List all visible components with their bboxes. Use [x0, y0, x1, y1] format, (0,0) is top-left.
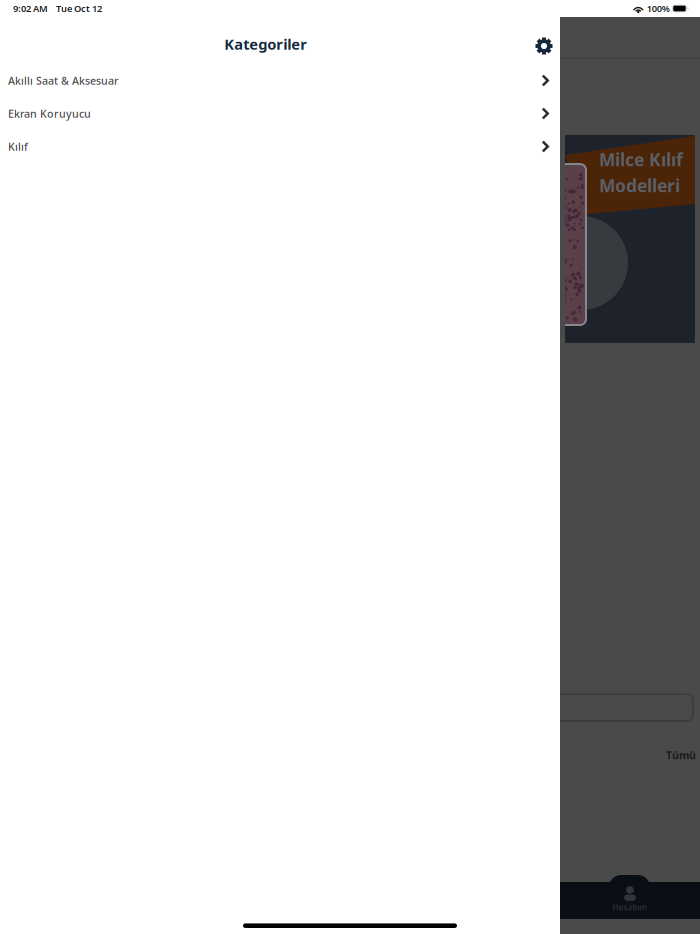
- staticText: Kategoriler: [224, 34, 307, 54]
- staticText: 9:02 AM: [13, 2, 48, 15]
- button[interactable]: Settings: [535, 14, 564, 62]
- button[interactable]: Akıllı Saat & Aksesuar: [0, 64, 560, 97]
- staticText: Modelleri: [599, 174, 680, 197]
- button[interactable]: Ekran Koruyucu: [0, 97, 560, 130]
- button[interactable]: Hesabım: [600, 886, 660, 913]
- staticText: Hesabım: [612, 902, 647, 913]
- staticText: 100%: [647, 2, 670, 15]
- staticText: Milce Kılıf: [599, 148, 683, 171]
- staticText: Tümü: [666, 748, 696, 762]
- button[interactable]: Kılıf: [0, 130, 560, 163]
- staticText: Kılıf: [8, 139, 28, 154]
- staticText: Ekran Koruyucu: [8, 106, 91, 121]
- staticText: Tue Oct 12: [56, 2, 102, 15]
- staticText: Akıllı Saat & Aksesuar: [8, 73, 119, 88]
